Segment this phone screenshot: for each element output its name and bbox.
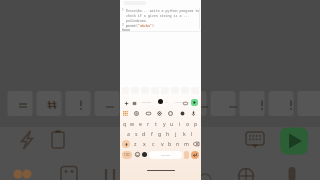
button[interactable]: v [158,138,166,149]
staticText: d [142,130,146,137]
button[interactable]: n [174,138,182,149]
button[interactable]: Backspace [190,138,201,149]
button[interactable]: z [131,138,140,149]
staticText: s [135,130,138,137]
staticText: h [166,130,170,137]
button[interactable]: ?123 [122,151,132,159]
staticText: w [130,120,135,127]
staticText: f [151,130,153,137]
staticText: 2 [122,23,125,27]
staticText: palindrome. [126,18,148,22]
staticText: c [152,140,155,147]
button[interactable]: r [144,118,152,129]
button[interactable]: Enter [191,151,199,159]
staticText: i [179,120,181,127]
button[interactable]: w [128,118,136,129]
button[interactable]: Themes [179,110,186,117]
staticText: 1 [122,8,125,12]
button[interactable]: Run [191,99,198,106]
staticText: a [127,130,130,137]
staticText: ?123 [124,153,130,157]
staticText: check if a given string is a ... [126,13,190,17]
button[interactable]: a [125,128,132,139]
staticText: "abcba" [138,23,152,27]
button[interactable]: b [166,138,174,149]
button[interactable]: x [140,138,149,149]
staticText: m [184,140,189,147]
button[interactable]: e [136,118,144,129]
staticText: j [175,130,177,137]
staticText: q [123,120,127,127]
staticText: y [163,120,166,127]
staticText: x [143,140,146,147]
button[interactable]: Record [158,99,163,104]
staticText: z [134,140,137,147]
staticText: 3 [122,28,125,32]
button[interactable]: d [140,128,148,139]
staticText: v [161,140,164,147]
button[interactable]: i [176,118,184,129]
button[interactable]: p [192,118,200,129]
staticText: l [191,130,193,137]
button[interactable]: g [156,128,164,139]
staticText: p [194,120,198,127]
button[interactable]: j [172,128,180,139]
button[interactable]: Voice input [190,110,197,117]
button[interactable]: l [188,128,196,139]
button[interactable]: Keyboard [182,100,188,106]
button[interactable]: o [184,118,192,129]
staticText: o [186,120,190,127]
button[interactable]: f [148,128,156,139]
button[interactable]: k [180,128,188,139]
staticText: print( [126,23,138,27]
staticText: ) [152,23,154,27]
staticText: u [170,120,174,127]
button[interactable]: Emoji [134,151,141,158]
button[interactable]: GIF [145,110,152,117]
staticText: b [168,140,172,147]
button[interactable]: q [121,118,128,129]
button[interactable]: Clipboard [133,110,140,117]
button[interactable]: t [152,118,160,129]
button[interactable]: y [160,118,168,129]
staticText: k [183,130,186,137]
button[interactable]: Suggestions [131,100,137,106]
button[interactable]: Stickers [167,110,174,117]
button[interactable]: Add [123,100,129,106]
button[interactable]: c [149,138,158,149]
staticText: Describe... write a python program to [126,8,200,12]
staticText: t [155,120,157,127]
staticText: r [147,120,150,127]
staticText: g [158,130,162,137]
button[interactable]: m [182,138,190,149]
button[interactable]: s [132,128,140,139]
button[interactable]: Shift [120,138,131,149]
button[interactable]: Settings [156,110,163,117]
staticText: e [139,120,142,127]
button[interactable] [149,151,182,159]
button[interactable]: u [168,118,176,129]
staticText: n [176,140,180,147]
button[interactable]: Period [184,151,189,159]
button[interactable]: h [164,128,172,139]
button[interactable]: Keyboard modes [122,110,129,117]
button[interactable]: Voice [142,152,147,157]
